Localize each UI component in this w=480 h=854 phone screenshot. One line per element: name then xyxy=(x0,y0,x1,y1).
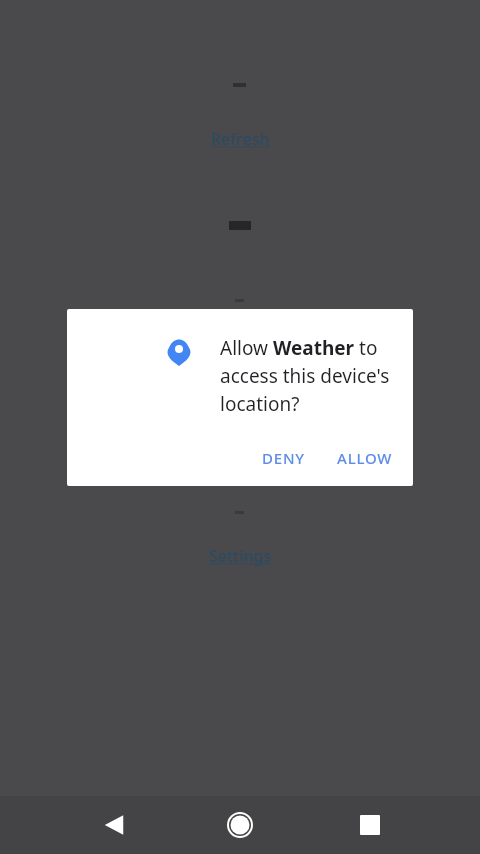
staticText: DENY xyxy=(262,448,305,468)
staticText: ALLOW xyxy=(337,448,393,468)
staticText: Allow Weather to access this device's lo… xyxy=(220,335,400,417)
staticText: Settings xyxy=(209,545,272,567)
button[interactable]: DENY xyxy=(250,438,317,478)
button[interactable]: Home xyxy=(210,796,270,854)
button[interactable]: Recent apps xyxy=(340,796,400,854)
button[interactable]: Settings xyxy=(198,543,282,569)
button[interactable]: Refresh xyxy=(200,126,280,152)
button[interactable]: Back xyxy=(84,796,144,854)
button[interactable]: ALLOW xyxy=(325,438,405,478)
staticText: Refresh xyxy=(211,128,270,150)
